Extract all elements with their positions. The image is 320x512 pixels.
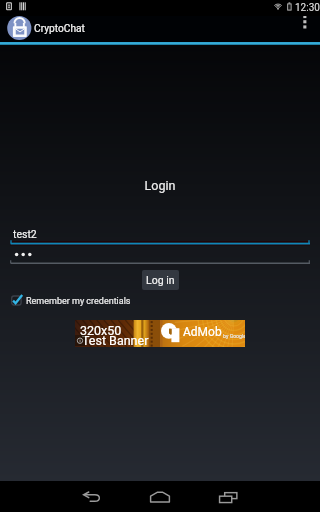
- button[interactable]: Recent apps: [197, 481, 261, 512]
- staticText: Login: [0, 178, 320, 193]
- button[interactable]: Home: [128, 481, 192, 512]
- staticText: test2: [13, 228, 37, 240]
- button[interactable]: More options: [294, 10, 316, 34]
- staticText: 320x50: [80, 323, 122, 338]
- staticText: AdMob: [183, 325, 222, 339]
- staticText: CryptoChat: [34, 23, 85, 35]
- button[interactable]: Back: [60, 481, 124, 512]
- staticText: Remember my credentials: [26, 296, 131, 307]
- staticText: Test Banner: [82, 333, 149, 347]
- staticText: 12:30: [295, 2, 320, 14]
- button[interactable]: Remember my credentials: [9, 293, 131, 309]
- button[interactable]: 320x50: [75, 320, 245, 347]
- button[interactable]: test2: [10, 227, 310, 244]
- staticText: Log in: [146, 274, 175, 286]
- button[interactable]: Log in: [142, 270, 179, 290]
- staticText: by Google: [223, 333, 245, 339]
- button[interactable]: [10, 249, 310, 264]
